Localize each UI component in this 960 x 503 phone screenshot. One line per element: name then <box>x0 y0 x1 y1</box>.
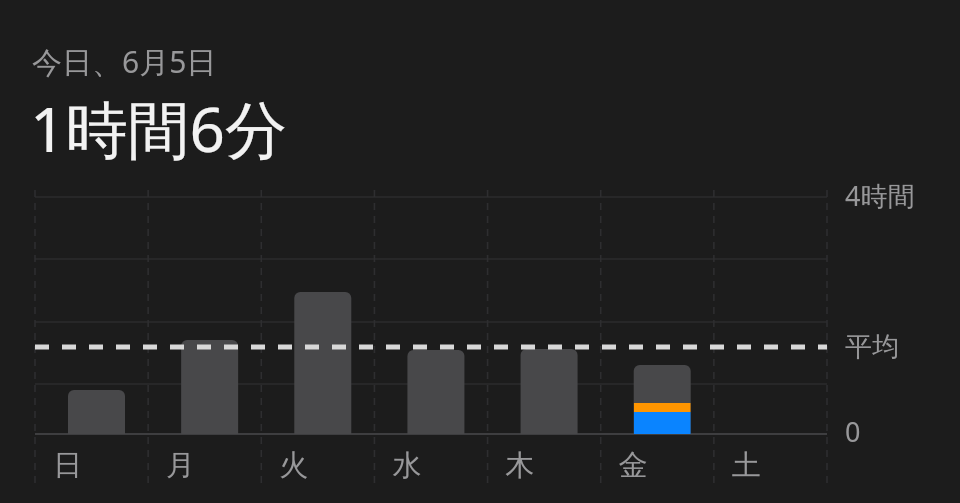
button[interactable]: Screen time chart for this week <box>0 0 960 503</box>
